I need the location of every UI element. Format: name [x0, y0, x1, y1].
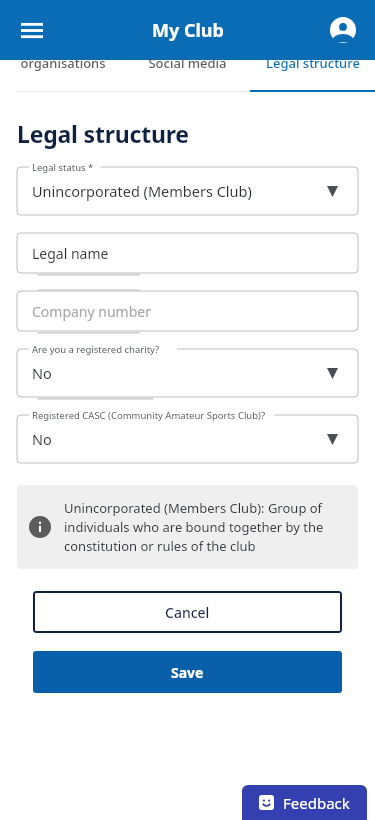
button[interactable]: Open navigation menu — [10, 8, 54, 52]
button[interactable]: Legal structure — [250, 48, 375, 78]
staticText: No — [32, 363, 52, 383]
button[interactable]: Save — [33, 651, 342, 693]
button[interactable]: Company number — [17, 291, 358, 331]
staticText: Feedback — [283, 793, 350, 813]
button[interactable]: Open Are you a registered charity? optio… — [320, 361, 344, 385]
button[interactable]: Account — [321, 8, 365, 52]
staticText: Company number — [32, 302, 151, 321]
staticText: Unincorporated (Members Club): Group of … — [64, 499, 344, 555]
button[interactable]: organisations — [0, 48, 125, 78]
button[interactable]: Legal name — [17, 233, 358, 273]
button[interactable]: Cancel — [33, 591, 342, 633]
staticText: No — [32, 429, 52, 449]
staticText: organisations — [20, 54, 106, 72]
staticText: My Club — [152, 18, 224, 43]
button[interactable]: Social media — [125, 48, 250, 78]
staticText: Save — [171, 663, 204, 682]
staticText: Social media — [148, 54, 227, 72]
button[interactable]: Open Registered CASC (Community Amateur … — [320, 427, 344, 451]
button[interactable]: Feedback — [242, 785, 367, 820]
staticText: Are you a registered charity? — [32, 343, 160, 356]
staticText: Legal name — [32, 244, 109, 263]
button[interactable]: Open Legal status * options — [320, 179, 344, 203]
staticText: Legal structure — [266, 54, 360, 72]
staticText: Registered CASC (Community Amateur Sport… — [32, 409, 266, 422]
staticText: Legal structure — [17, 118, 189, 149]
staticText: Cancel — [165, 603, 210, 622]
staticText: Unincorporated (Members Club) — [32, 181, 252, 201]
staticText: Legal status * — [32, 161, 94, 174]
